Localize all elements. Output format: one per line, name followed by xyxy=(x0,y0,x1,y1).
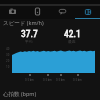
staticText: 20 xyxy=(6,59,10,63)
button[interactable]: Camera xyxy=(0,6,25,19)
button[interactable]: Device xyxy=(25,6,50,19)
staticText: 0.5 km xyxy=(25,78,34,82)
staticText: 0.5 km xyxy=(73,78,82,82)
staticText: 心拍数 (bpm) xyxy=(3,90,37,98)
staticText: 30 xyxy=(6,53,10,57)
staticText: 37.7 xyxy=(21,28,38,39)
staticText: 40 xyxy=(6,47,10,51)
staticText: 0.5 km xyxy=(43,78,52,82)
staticText: 平均 xyxy=(25,39,33,44)
staticText: 最高 xyxy=(68,39,76,44)
staticText: 0.5 km xyxy=(56,78,65,82)
button[interactable]: Dashboard xyxy=(75,6,100,19)
button[interactable]: Messages xyxy=(50,6,75,19)
staticText: 42.1 xyxy=(64,28,81,39)
staticText: スピード (km/h) xyxy=(3,19,44,27)
staticText: 10 xyxy=(6,65,10,69)
